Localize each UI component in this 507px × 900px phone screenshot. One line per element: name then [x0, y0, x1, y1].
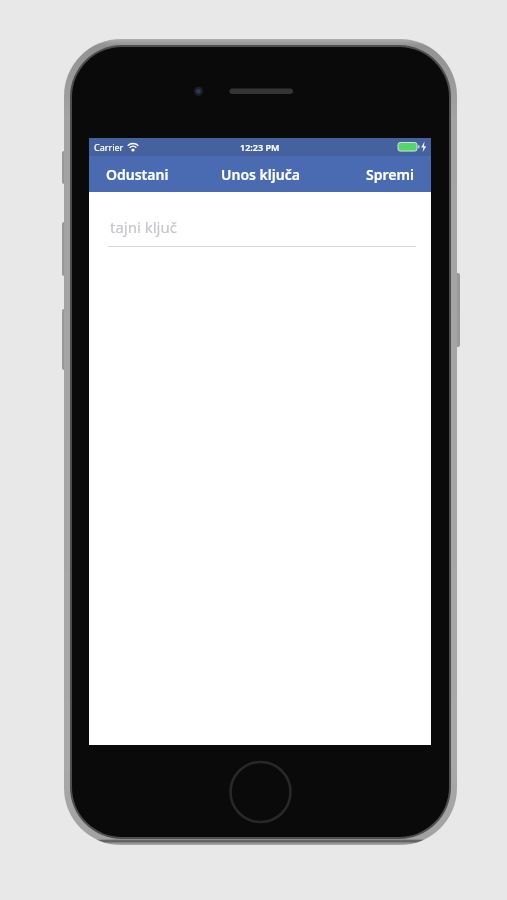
staticText: tajni ključ — [110, 217, 177, 237]
staticText: 12:23 PM — [240, 141, 280, 153]
staticText: Spremi — [366, 165, 414, 184]
staticText: Unos ključa — [221, 165, 300, 184]
staticText: Carrier — [94, 141, 124, 153]
staticText: Odustani — [106, 165, 169, 184]
